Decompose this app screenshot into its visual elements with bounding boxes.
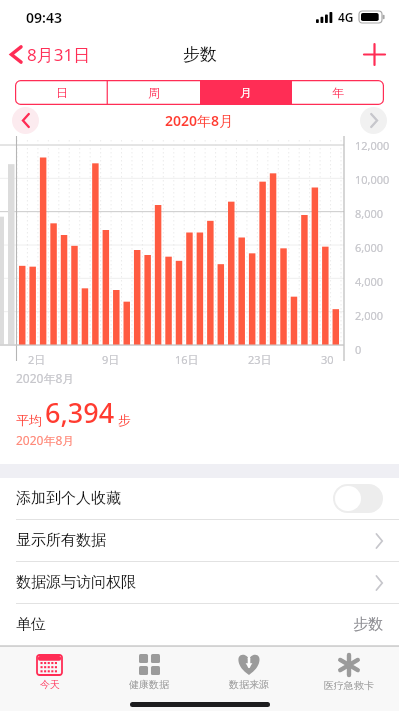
staticText: 数据源与访问权限 <box>16 573 136 592</box>
button[interactable]: 数据源与访问权限 <box>0 562 399 603</box>
button[interactable]: 8月31日 <box>0 38 101 71</box>
staticText: 步数 <box>353 615 383 634</box>
staticText: 医疗急救卡 <box>324 679 374 692</box>
staticText: 4G <box>338 9 354 25</box>
staticText: 30 <box>321 352 334 367</box>
staticText: 健康数据 <box>129 678 169 691</box>
button[interactable]: 月 <box>200 80 292 105</box>
button[interactable]: 数据来源 <box>199 647 299 698</box>
button[interactable]: 医疗急救卡 <box>299 647 399 698</box>
staticText: 步数 <box>183 44 217 65</box>
button[interactable]: 添加到个人收藏 <box>0 478 399 519</box>
staticText: 步 <box>118 412 131 428</box>
staticText: 数据来源 <box>229 678 269 691</box>
staticText: 2020年8月 <box>16 432 75 448</box>
button[interactable]: Add <box>350 37 399 72</box>
staticText: 8,000 <box>355 206 384 221</box>
staticText: 周 <box>148 85 160 100</box>
staticText: 6,000 <box>355 240 384 255</box>
staticText: 年 <box>332 85 344 100</box>
staticText: 今天 <box>40 678 60 691</box>
button[interactable]: Next month <box>360 107 387 134</box>
staticText: 单位 <box>16 615 46 634</box>
button[interactable]: 周 <box>108 80 200 105</box>
button[interactable]: 显示所有数据 <box>0 520 399 561</box>
staticText: 4,000 <box>355 274 384 289</box>
staticText: 8月31日 <box>27 43 91 66</box>
staticText: 2日 <box>28 352 46 367</box>
staticText: 12,000 <box>355 138 390 153</box>
button[interactable]: 日 <box>15 80 108 105</box>
button[interactable]: 今天 <box>0 647 99 698</box>
staticText: 16日 <box>175 352 199 367</box>
staticText: 10,000 <box>355 172 390 187</box>
staticText: 09:43 <box>26 8 62 27</box>
staticText: 9日 <box>102 352 120 367</box>
staticText: 日 <box>56 85 68 100</box>
button[interactable]: Previous month <box>12 107 39 134</box>
staticText: 月 <box>240 85 252 100</box>
staticText: 23日 <box>248 352 272 367</box>
button[interactable]: 健康数据 <box>99 647 199 698</box>
staticText: 添加到个人收藏 <box>16 489 121 508</box>
staticText: 0 <box>355 342 362 357</box>
staticText: 6,394 <box>45 394 115 431</box>
staticText: 2,000 <box>355 308 384 323</box>
staticText: 平均 <box>16 412 42 428</box>
button[interactable]: 单位 <box>0 604 399 645</box>
button[interactable]: 年 <box>292 80 384 105</box>
staticText: 2020年8月 <box>165 111 234 130</box>
staticText: 显示所有数据 <box>16 531 106 550</box>
staticText: 2020年8月 <box>16 370 75 386</box>
